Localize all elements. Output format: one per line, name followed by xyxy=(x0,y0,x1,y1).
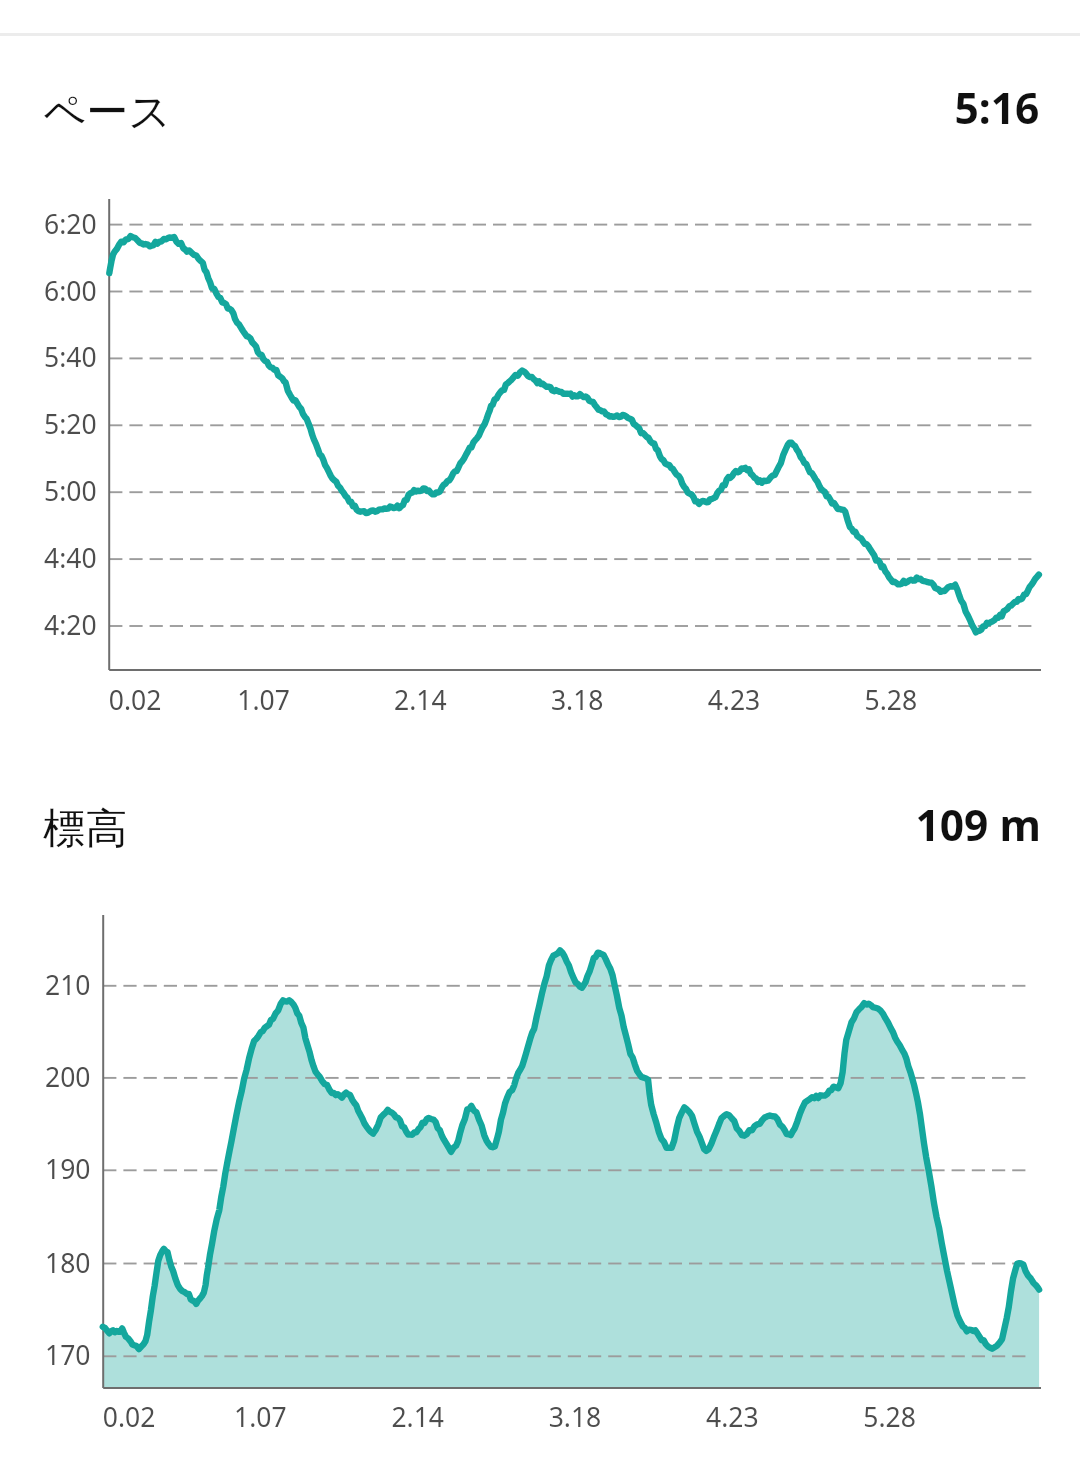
button[interactable]: ペース 5:16 chart xyxy=(0,36,1080,738)
button[interactable]: 標高 109 m chart xyxy=(0,738,1080,1443)
